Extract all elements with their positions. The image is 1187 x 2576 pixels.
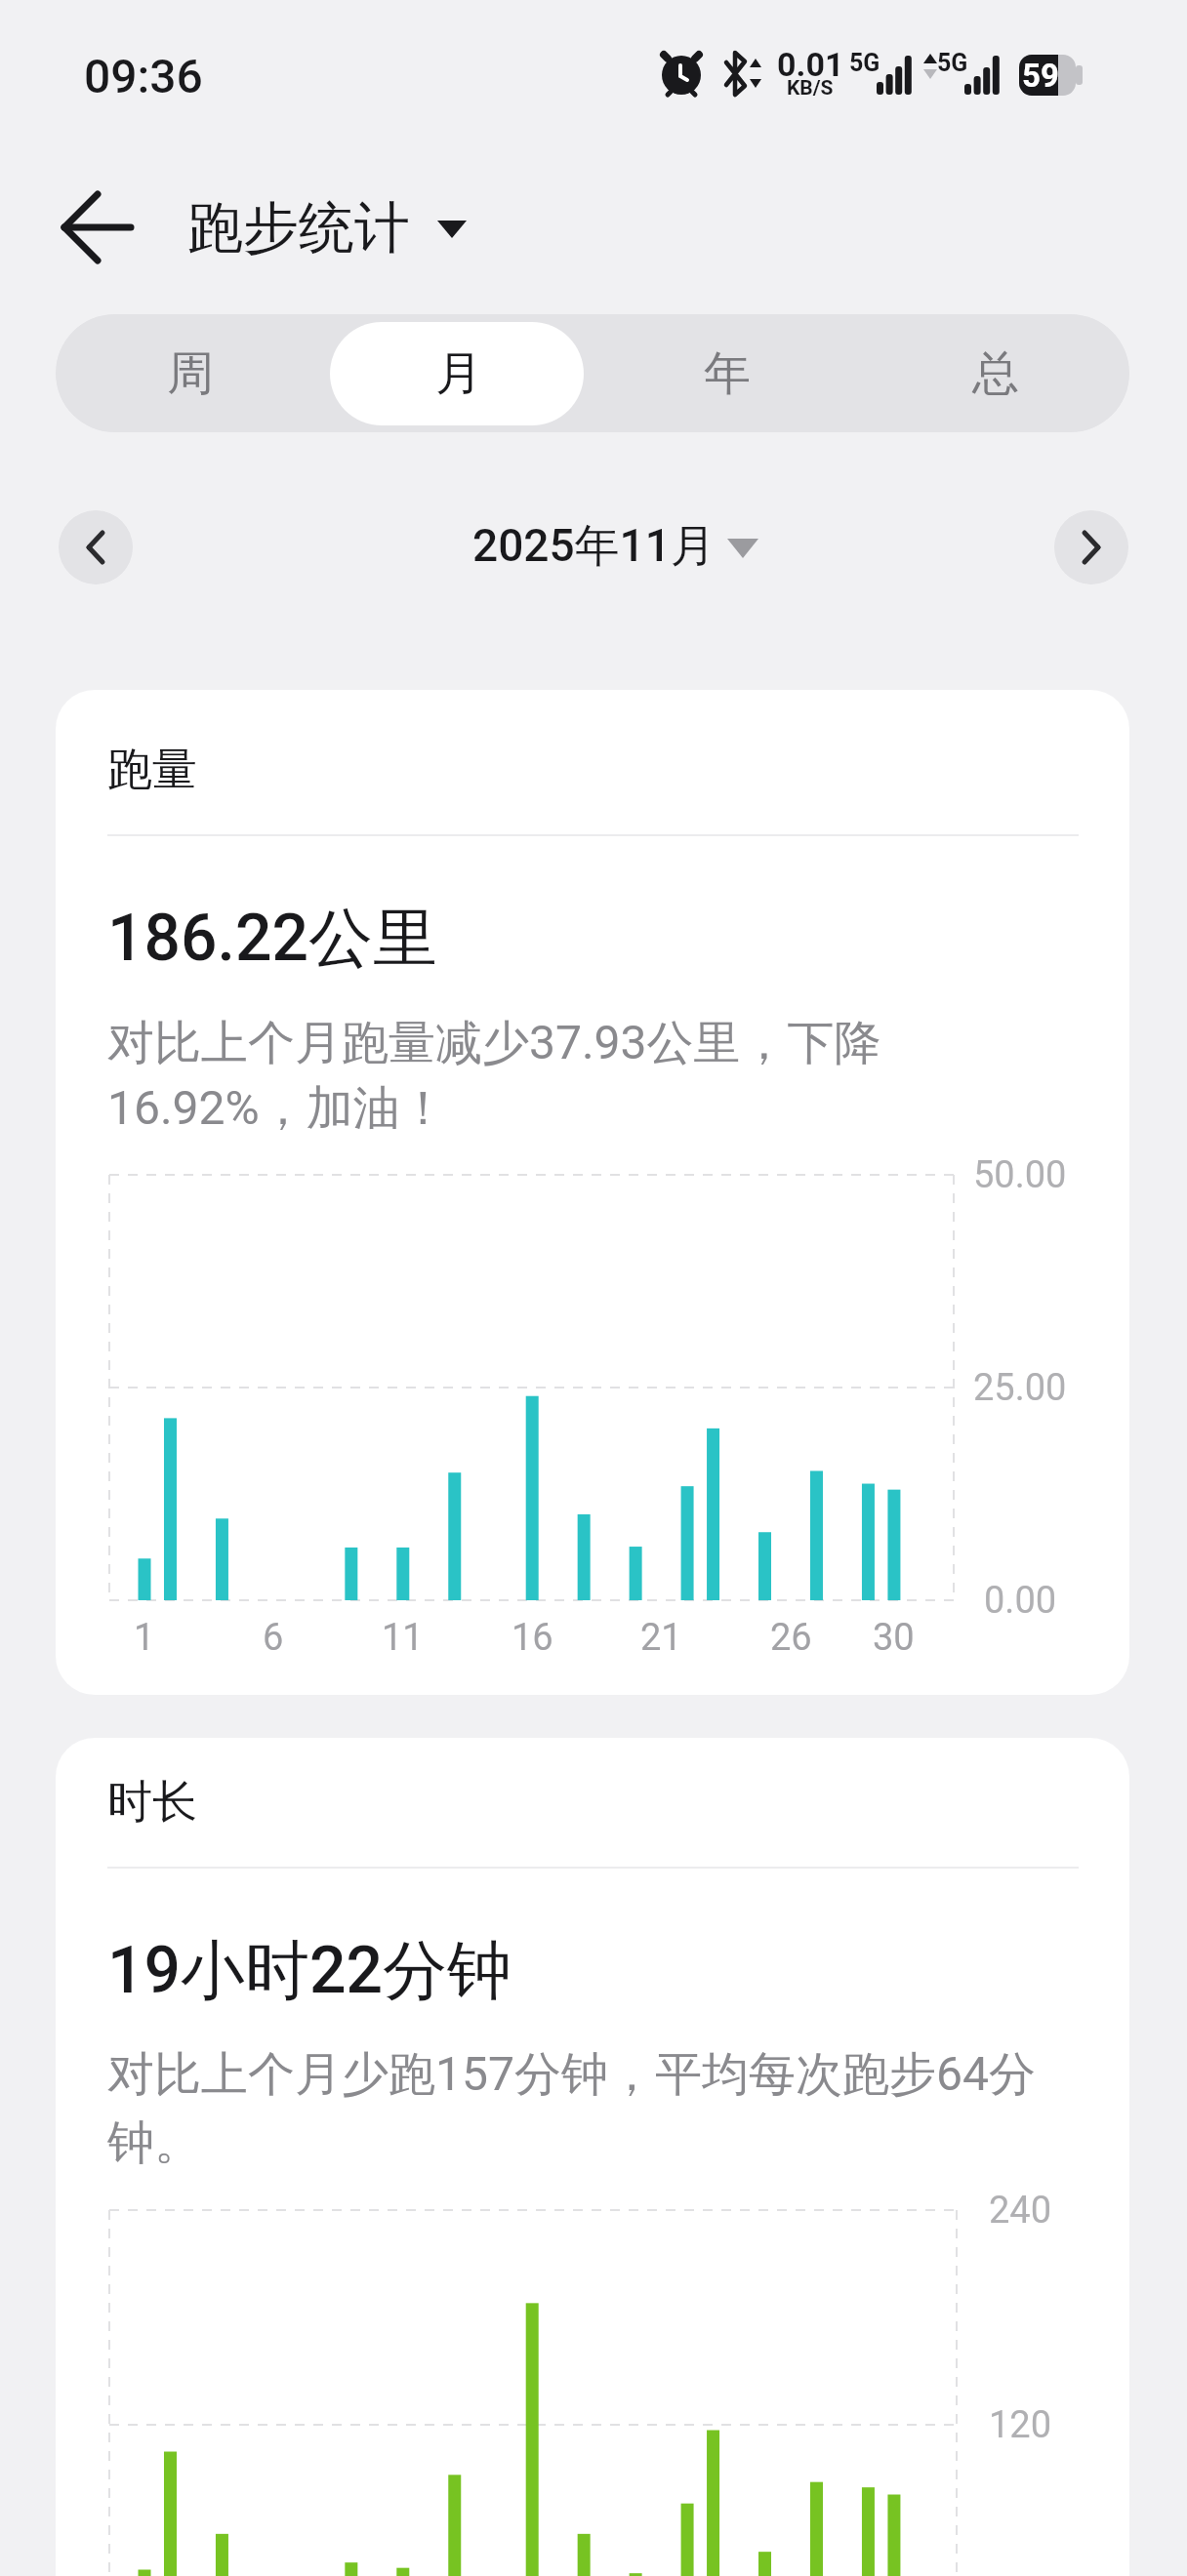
- staticText: 6: [263, 1616, 284, 1660]
- staticText: 0.00: [984, 1579, 1057, 1623]
- button[interactable]: [39, 190, 146, 268]
- staticText: 时长: [107, 1774, 197, 1831]
- staticText: 25.00: [973, 1366, 1067, 1410]
- staticText: 对比上个月少跑157分钟，平均每次跑步64分: [107, 2045, 1036, 2104]
- staticText: 5G: [849, 49, 880, 77]
- staticText: 120: [989, 2403, 1052, 2447]
- staticText: 16.92%，加油！: [107, 1079, 447, 1138]
- staticText: 50.00: [973, 1153, 1067, 1197]
- staticText: 跑步统计: [187, 193, 410, 263]
- staticText: 59: [1022, 57, 1059, 95]
- button[interactable]: [1054, 510, 1128, 584]
- staticText: KB/S: [787, 76, 834, 101]
- staticText: 240: [989, 2189, 1052, 2233]
- staticText: 5G: [937, 49, 968, 77]
- button[interactable]: 月: [324, 314, 593, 432]
- staticText: 周: [167, 344, 214, 403]
- staticText: 跑量: [107, 742, 197, 798]
- staticText: 09:36: [84, 49, 203, 103]
- staticText: 2025年11月: [472, 518, 716, 575]
- button[interactable]: [420, 507, 771, 585]
- staticText: 月: [435, 344, 482, 403]
- staticText: 19小时22分钟: [107, 1930, 512, 2011]
- staticText: 21: [640, 1616, 682, 1660]
- staticText: 年: [704, 344, 751, 403]
- staticText: 对比上个月跑量减少37.93公里，下降: [107, 1014, 881, 1072]
- staticText: 0.01: [777, 45, 844, 84]
- staticText: 钟。: [107, 2113, 201, 2172]
- staticText: 总: [972, 344, 1019, 403]
- button[interactable]: 跑步统计: [187, 189, 480, 267]
- button[interactable]: 总: [861, 314, 1129, 432]
- button[interactable]: [59, 510, 133, 584]
- staticText: 16: [512, 1616, 553, 1660]
- button[interactable]: 年: [593, 314, 861, 432]
- staticText: 30: [873, 1616, 915, 1660]
- staticText: 186.22公里: [107, 898, 437, 979]
- staticText: 26: [770, 1616, 812, 1660]
- staticText: 1: [134, 1616, 155, 1660]
- staticText: 11: [382, 1616, 424, 1660]
- button[interactable]: 周: [56, 314, 324, 432]
